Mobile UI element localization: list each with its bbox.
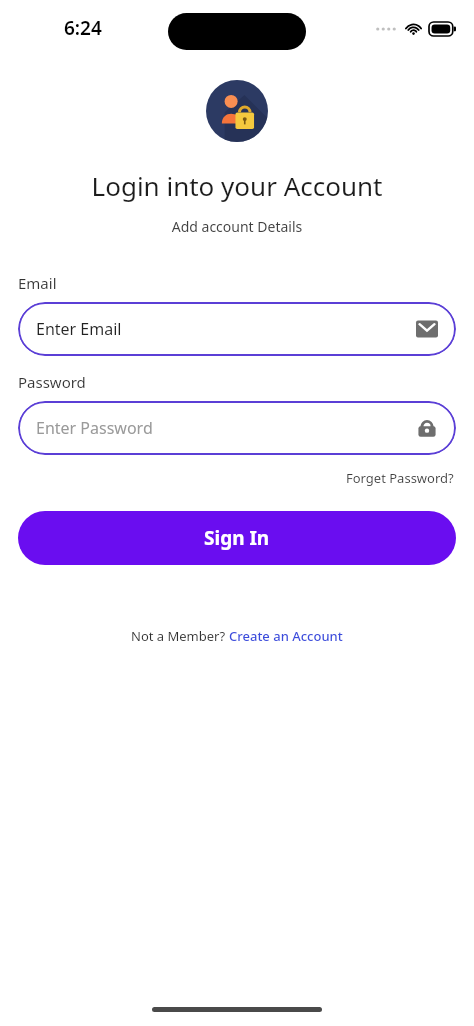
button[interactable]: Enter Email <box>18 302 456 356</box>
button[interactable]: Create an Account <box>229 627 343 645</box>
staticText: Not a Member? <box>131 627 229 645</box>
staticText: Sign In <box>204 525 270 551</box>
other: Show password <box>414 415 440 441</box>
button[interactable]: Sign In <box>18 511 456 565</box>
staticText: Forget Password? <box>346 469 454 487</box>
staticText: Password <box>18 372 86 392</box>
other: Email <box>414 316 440 342</box>
staticText: 6:24 <box>64 15 102 41</box>
staticText: Enter Email <box>36 318 414 340</box>
button[interactable]: Enter Password <box>18 401 456 455</box>
button[interactable]: Forget Password? <box>344 467 456 489</box>
staticText: Email <box>18 273 57 293</box>
staticText: Create an Account <box>229 627 343 645</box>
staticText: Add account Details <box>0 217 474 236</box>
staticText: Login into your Account <box>0 168 474 203</box>
staticText: Enter Password <box>36 417 414 439</box>
